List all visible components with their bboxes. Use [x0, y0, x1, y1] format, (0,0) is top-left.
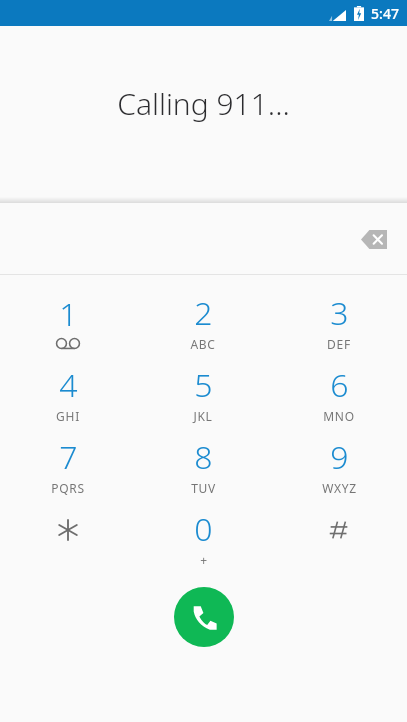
staticText: GHI [56, 408, 80, 424]
button[interactable]: 1 [0, 285, 135, 357]
button[interactable]: 3 [271, 285, 407, 357]
staticText: DEF [327, 336, 351, 352]
staticText: WXYZ [322, 480, 357, 496]
staticText: 5 [194, 363, 213, 407]
staticText: 8 [194, 435, 213, 479]
staticText: JKL [193, 408, 213, 424]
button[interactable]: 2 [135, 285, 271, 357]
staticText: PQRS [51, 480, 85, 496]
button[interactable]: 9 [271, 429, 407, 501]
button[interactable]: 6 [271, 357, 407, 429]
staticText: 5:47 [371, 4, 399, 23]
staticText: 7 [59, 435, 78, 479]
button[interactable]: 8 [135, 429, 271, 501]
button[interactable] [0, 501, 135, 573]
staticText: 9 [330, 435, 349, 479]
staticText: 1 [59, 292, 78, 336]
staticText: 6 [330, 363, 349, 407]
button[interactable]: 4 [0, 357, 135, 429]
staticText: MNO [323, 408, 355, 424]
button[interactable]: Call [174, 587, 234, 647]
staticText: Calling 911... [117, 83, 290, 124]
staticText: ABC [190, 336, 216, 352]
button[interactable] [271, 501, 407, 573]
staticText: 2 [194, 291, 213, 335]
staticText: TUV [191, 480, 216, 496]
staticText: 3 [330, 291, 349, 335]
button[interactable]: 7 [0, 429, 135, 501]
button[interactable]: Backspace [353, 219, 397, 259]
button[interactable]: 0 [135, 501, 271, 573]
staticText: 4 [59, 363, 78, 407]
staticText: + [200, 552, 208, 568]
staticText: 0 [194, 507, 213, 551]
button[interactable]: 5 [135, 357, 271, 429]
